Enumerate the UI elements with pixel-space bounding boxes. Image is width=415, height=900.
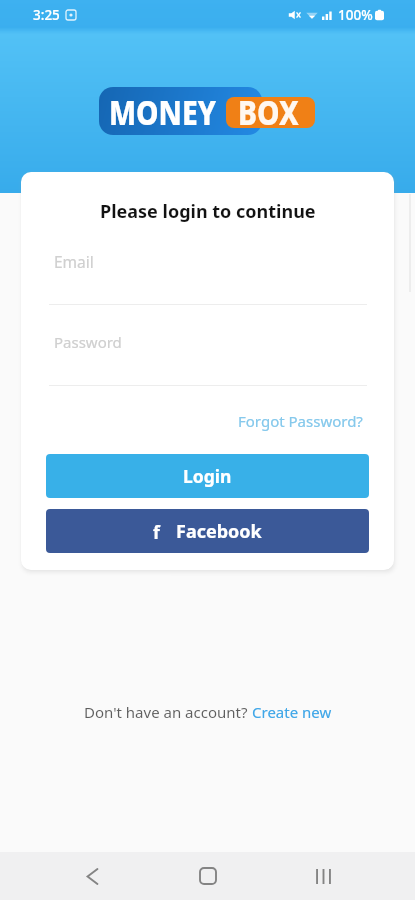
staticText: Email: [54, 251, 94, 272]
staticText: 3:25: [33, 6, 60, 24]
button[interactable]: Login: [46, 454, 369, 498]
button[interactable]: Back: [68, 852, 116, 900]
button[interactable]: Home: [184, 852, 232, 900]
button[interactable]: Recent apps: [299, 852, 347, 900]
staticText: Don't have an account?: [84, 702, 252, 722]
staticText: 100%: [338, 6, 373, 24]
staticText: f: [153, 520, 160, 544]
button[interactable]: f: [46, 509, 369, 553]
staticText: Facebook: [176, 519, 262, 544]
staticText: Password: [54, 332, 122, 352]
staticText: MONEY: [109, 90, 216, 135]
staticText: Login: [183, 464, 232, 488]
staticText: BOX: [238, 90, 299, 135]
button[interactable]: Create new: [252, 702, 332, 722]
staticText: Please login to continue: [100, 199, 316, 224]
button[interactable]: Forgot Password?: [238, 411, 363, 431]
